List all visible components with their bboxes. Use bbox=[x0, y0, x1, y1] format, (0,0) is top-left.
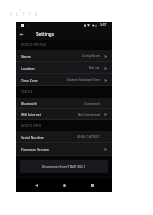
staticText: 3:57 bbox=[100, 23, 107, 27]
staticText: Wifi Internet bbox=[21, 112, 41, 117]
staticText: Settings bbox=[36, 31, 54, 37]
staticText: Name bbox=[21, 54, 31, 59]
staticText: Eastern Standard Time bbox=[67, 78, 100, 82]
staticText: GH24-7-8C90CF bbox=[77, 135, 100, 139]
staticText: STATUS bbox=[21, 90, 33, 94]
staticText: Disconnect from START 802.1 bbox=[42, 165, 86, 169]
staticText: Location bbox=[21, 66, 35, 71]
button[interactable]: Wifi Internet bbox=[16, 109, 112, 120]
button[interactable]: Firmware Version bbox=[16, 143, 112, 156]
staticText: Living Room bbox=[82, 54, 100, 58]
button[interactable]: Location bbox=[16, 62, 112, 74]
button[interactable]: Disconnect from START 802.1 bbox=[20, 160, 108, 173]
staticText: Firmware Version bbox=[21, 147, 49, 152]
staticText: DEVICE PROFILE bbox=[21, 43, 47, 47]
staticText: Serial Number bbox=[21, 135, 44, 140]
button[interactable]: Back bbox=[17, 28, 26, 40]
staticText: Not set bbox=[89, 66, 100, 70]
button[interactable]: Bluetooth bbox=[16, 98, 112, 109]
staticText: F L Y T E bbox=[10, 11, 39, 17]
staticText: Time Zone bbox=[21, 78, 38, 83]
staticText: Bluetooth bbox=[21, 101, 37, 106]
staticText: Connected bbox=[84, 102, 100, 106]
staticText: Not Connected bbox=[78, 113, 100, 117]
staticText: DEVICE INFO bbox=[21, 124, 42, 128]
button[interactable]: Serial Number bbox=[16, 131, 112, 143]
button[interactable]: Back bbox=[28, 179, 44, 192]
button[interactable]: Time Zone bbox=[16, 74, 112, 86]
button[interactable]: Recent apps bbox=[84, 179, 100, 192]
button[interactable]: Home bbox=[56, 179, 72, 192]
button[interactable]: Name bbox=[16, 50, 112, 62]
